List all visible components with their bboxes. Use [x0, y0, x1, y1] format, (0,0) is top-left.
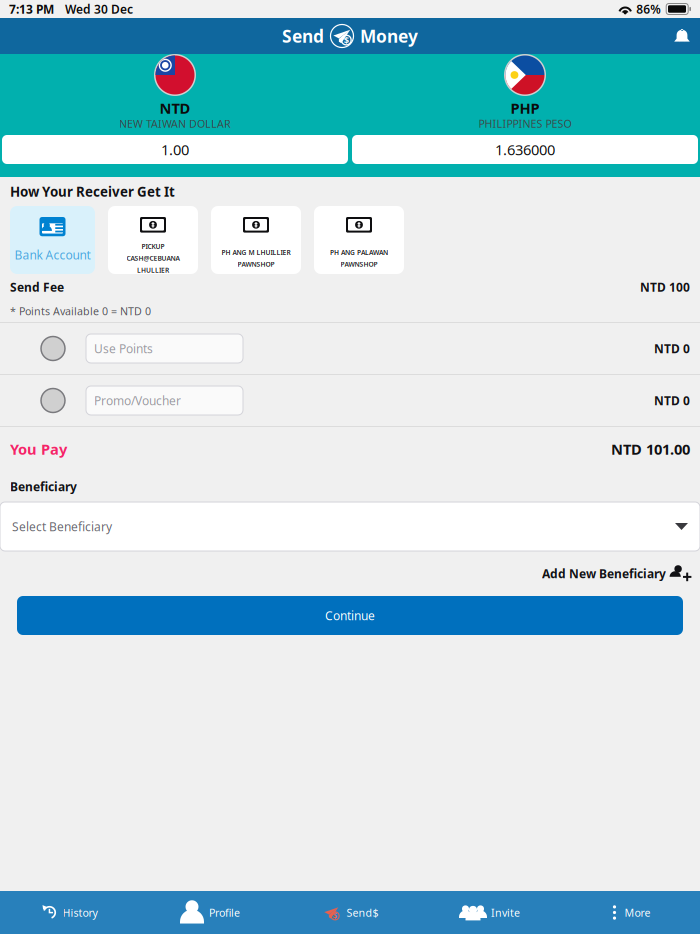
staticText: Promo/Voucher — [94, 392, 181, 408]
staticText: $ — [333, 911, 338, 921]
staticText: LHULLIER — [137, 266, 169, 275]
staticText: NTD 0 — [654, 340, 690, 356]
staticText: Beneficiary — [10, 478, 77, 494]
button[interactable]: Add New Beneficiary — [532, 558, 700, 588]
button[interactable]: Use Points toggle — [0, 323, 86, 374]
staticText: Continue — [325, 607, 375, 623]
staticText: NTD 0 — [654, 392, 690, 408]
button[interactable]: Select Beneficiary — [0, 502, 700, 551]
staticText: Invite — [491, 905, 520, 920]
staticText: PHILIPPINES PESO — [478, 116, 571, 131]
staticText: Wed 30 Dec — [65, 1, 133, 17]
button[interactable]: $ — [280, 891, 420, 934]
button[interactable]: PH ANG M LHUILLIER — [211, 206, 301, 274]
staticText: PAWNSHOP — [237, 260, 274, 269]
staticText: $ — [344, 34, 349, 46]
button[interactable]: 1.00 — [2, 135, 348, 164]
staticText: PH ANG PALAWAN — [330, 248, 388, 257]
staticText: Send$ — [346, 905, 378, 920]
staticText: Bank Account — [14, 247, 90, 263]
button[interactable]: Continue — [17, 596, 683, 635]
staticText: PICKUP — [141, 242, 164, 251]
staticText: * Points Available 0 = NTD 0 — [10, 304, 151, 318]
staticText: You Pay — [10, 439, 67, 459]
staticText: 86% — [636, 1, 661, 17]
button[interactable]: Profile — [140, 891, 280, 934]
staticText: NTD — [159, 98, 190, 118]
button[interactable]: Notifications — [664, 18, 700, 54]
staticText: 7:13 PM — [9, 1, 54, 17]
staticText: Profile — [209, 905, 240, 920]
staticText: Send Fee — [10, 279, 64, 295]
staticText: PH ANG M LHUILLIER — [221, 248, 290, 257]
staticText: PHP — [510, 98, 539, 118]
staticText: NTD 100 — [640, 279, 690, 295]
button[interactable]: 1.636000 — [352, 135, 698, 164]
button[interactable]: PICKUP — [108, 206, 198, 274]
staticText: Use Points — [94, 340, 153, 356]
staticText: Money — [360, 24, 418, 47]
staticText: PAWNSHOP — [340, 260, 377, 269]
button[interactable]: PH ANG PALAWAN — [314, 206, 404, 274]
staticText: History — [62, 905, 97, 920]
button[interactable]: Promo/Voucher toggle — [0, 375, 86, 426]
staticText: CASH@CEBUANA — [126, 254, 179, 263]
staticText: NEW TAIWAN DOLLAR — [119, 116, 231, 131]
staticText: Add New Beneficiary — [542, 565, 666, 581]
staticText: Select Beneficiary — [12, 518, 112, 534]
staticText: Send — [282, 24, 324, 47]
staticText: How Your Receiver Get It — [10, 183, 175, 200]
button[interactable]: Promo/Voucher — [86, 386, 243, 415]
button[interactable]: Invite — [420, 891, 560, 934]
button[interactable]: Bank Account — [10, 206, 95, 274]
staticText: 1.636000 — [495, 140, 555, 159]
staticText: 1.00 — [161, 140, 189, 159]
staticText: More — [624, 905, 650, 920]
button[interactable]: Use Points — [86, 334, 243, 363]
button[interactable]: More — [560, 891, 700, 934]
button[interactable]: History — [0, 891, 140, 934]
staticText: NTD 101.00 — [611, 439, 690, 459]
